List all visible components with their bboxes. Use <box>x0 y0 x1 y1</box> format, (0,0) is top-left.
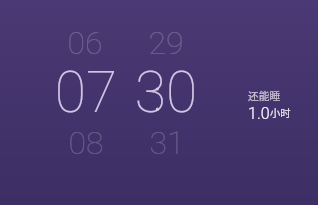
staticText: 08 <box>16 124 156 163</box>
staticText: 30 <box>96 59 236 128</box>
button[interactable]: Minute <box>159 14 237 191</box>
staticText: 1.0 <box>248 104 270 123</box>
staticText: 31 <box>97 124 237 163</box>
staticText: 还能睡 <box>248 88 281 103</box>
staticText: 29 <box>96 24 236 63</box>
button[interactable]: 还能睡 <box>242 80 302 122</box>
staticText: 07 <box>16 59 156 128</box>
staticText: 06 <box>15 24 155 63</box>
staticText: 小时 <box>270 105 291 120</box>
button[interactable]: Hour <box>78 14 156 191</box>
